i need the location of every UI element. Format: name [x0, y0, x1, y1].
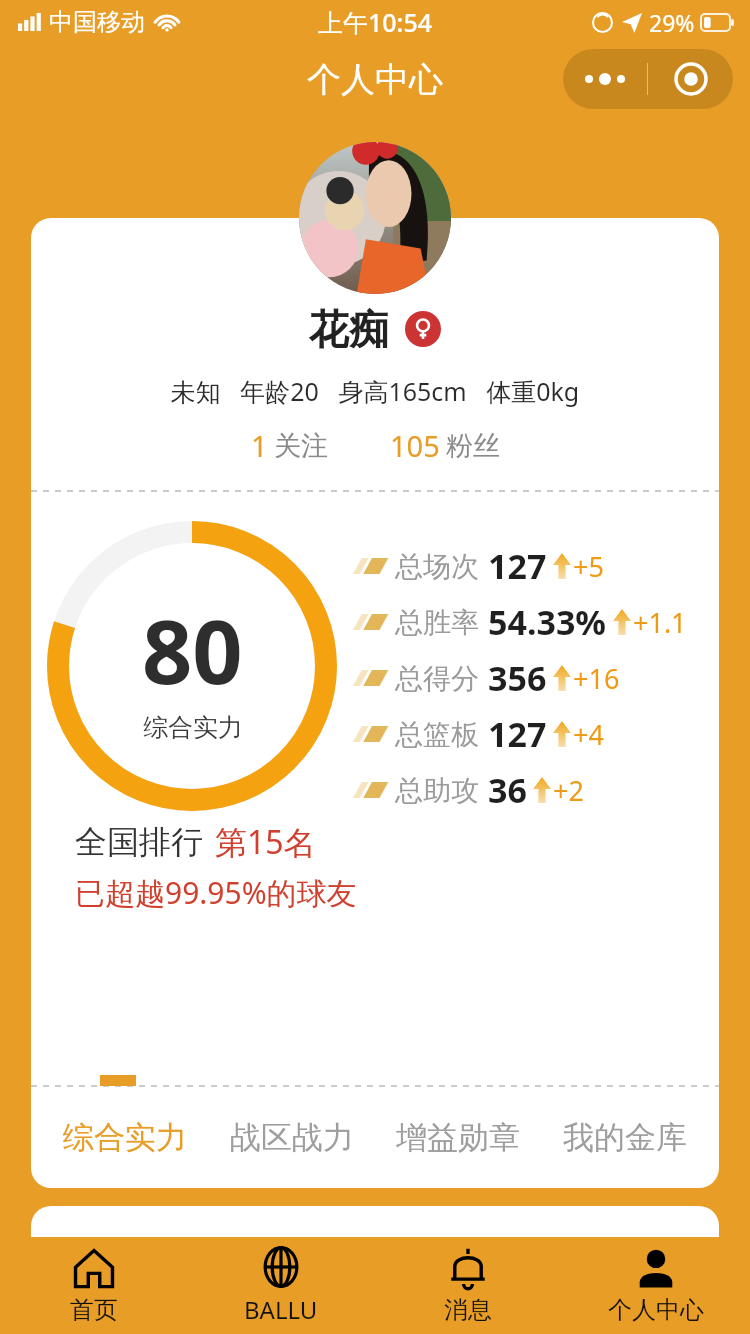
button[interactable]: BALLU — [187, 1237, 374, 1334]
staticText: 全国排行 — [75, 822, 203, 862]
staticText: 1 — [251, 426, 268, 465]
staticText: 消息 — [444, 1295, 492, 1325]
button[interactable]: 总助攻 — [353, 762, 719, 818]
button[interactable]: 增益勋章 — [386, 1108, 530, 1167]
staticText: 127 — [488, 711, 547, 757]
staticText: 356 — [488, 655, 547, 701]
staticText: 总助攻 — [395, 773, 479, 808]
staticText: 105 — [390, 426, 440, 465]
staticText: 36 — [488, 767, 527, 813]
staticText: 上午10:54 — [318, 5, 433, 39]
staticText: 中国移动 — [49, 7, 145, 37]
staticText: 首页 — [70, 1295, 118, 1325]
staticText: 总得分 — [395, 661, 479, 696]
staticText: 综合实力 — [63, 1118, 187, 1157]
staticText: 我的金库 — [563, 1118, 687, 1157]
staticText: 127 — [488, 543, 547, 589]
button[interactable]: 更多 — [563, 49, 733, 109]
button[interactable]: 总场次 — [353, 538, 719, 594]
staticText: 增益勋章 — [396, 1118, 520, 1157]
button[interactable]: 105 — [390, 426, 500, 465]
staticText: 综合实力 — [143, 712, 243, 743]
staticText: 总场次 — [395, 549, 479, 584]
button[interactable]: 战区战力 — [220, 1108, 364, 1167]
staticText: +2 — [553, 772, 584, 809]
staticText: 关注 — [274, 429, 328, 463]
staticText: 29% — [649, 7, 695, 38]
staticText: 54.33% — [488, 599, 607, 645]
button[interactable]: 总篮板 — [353, 706, 719, 762]
staticText: 80 — [142, 590, 243, 710]
staticText: 未知 年龄20 身高165cm 体重0kg — [31, 374, 719, 408]
button[interactable]: 综合实力 — [53, 1108, 197, 1167]
button[interactable]: 个人中心 — [562, 1237, 750, 1334]
button[interactable]: 消息 — [374, 1237, 562, 1334]
button[interactable]: 头像 — [299, 142, 451, 294]
staticText: 粉丝 — [446, 429, 500, 463]
staticText: 总篮板 — [395, 717, 479, 752]
button[interactable]: 我的金库 — [553, 1108, 697, 1167]
staticText: +1.1 — [633, 604, 687, 641]
staticText: 战区战力 — [230, 1118, 354, 1157]
staticText: 总胜率 — [395, 605, 479, 640]
staticText: 花痴 — [309, 304, 389, 354]
staticText: 第15名 — [215, 820, 316, 864]
button[interactable]: 首页 — [0, 1237, 187, 1334]
button[interactable]: 1 — [251, 426, 328, 465]
staticText: +4 — [573, 716, 604, 753]
staticText: 已超越99.95%的球友 — [75, 872, 357, 913]
button[interactable]: 总得分 — [353, 650, 719, 706]
button[interactable]: 总胜率 — [353, 594, 719, 650]
staticText: 个人中心 — [307, 58, 443, 101]
staticText: 个人中心 — [608, 1295, 704, 1325]
staticText: BALLU — [244, 1293, 318, 1326]
staticText: +16 — [573, 660, 620, 697]
staticText: +5 — [573, 548, 604, 585]
